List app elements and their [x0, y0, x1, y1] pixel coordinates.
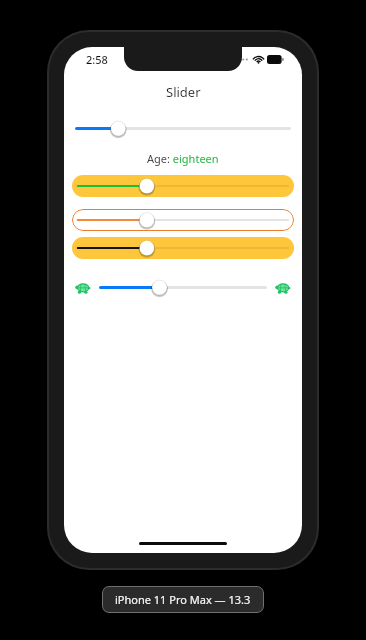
button[interactable]: Slow	[74, 279, 92, 297]
staticText: Age: eighteen	[147, 151, 219, 166]
button[interactable]	[72, 209, 294, 231]
button[interactable]	[72, 175, 294, 197]
button[interactable]	[98, 277, 268, 298]
staticText: 2:58	[86, 52, 108, 67]
button[interactable]: iPhone 11 Pro Max — 13.3	[115, 592, 251, 607]
staticText: iPhone 11 Pro Max — 13.3	[115, 592, 251, 607]
button[interactable]	[72, 237, 294, 259]
button[interactable]: Fast	[274, 279, 292, 297]
staticText: Slider	[166, 83, 201, 101]
button[interactable]	[74, 118, 292, 139]
